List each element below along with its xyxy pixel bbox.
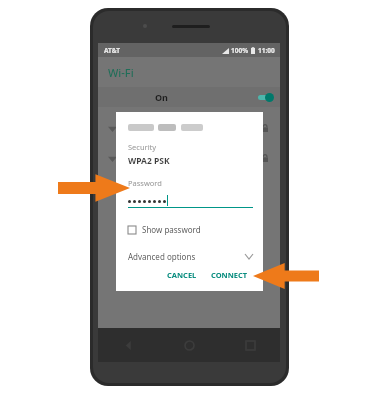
staticText: Security <box>128 142 157 152</box>
staticText: CANCEL <box>167 270 197 280</box>
staticText: WPA2 PSK <box>128 155 170 167</box>
staticText: Password <box>128 178 162 188</box>
button[interactable]: On <box>98 87 280 107</box>
staticText: On <box>155 91 168 103</box>
staticText: Show password <box>142 224 201 235</box>
other: Arrow pointing to password field <box>58 173 130 203</box>
staticText: CONNECT <box>211 270 248 280</box>
staticText: Wi-Fi <box>108 65 134 80</box>
button[interactable]: Show password <box>128 224 201 235</box>
button[interactable]: CANCEL <box>162 267 202 283</box>
button[interactable]: Wi-Fi <box>98 57 280 87</box>
button[interactable]: MySpectrumWiFi66-2G <box>98 113 280 143</box>
staticText: Advanced options <box>128 251 196 262</box>
staticText: 11:00 <box>258 46 275 55</box>
button[interactable]: Advanced options <box>128 251 253 262</box>
other: Arrow pointing to Connect button <box>253 262 319 290</box>
button[interactable]: CONNECT <box>206 267 253 283</box>
button[interactable]: MySpectrumWiFi81-2G <box>98 143 280 173</box>
staticText: MySpectrumWiFi66-2G <box>134 122 225 134</box>
staticText: 100% <box>231 46 249 55</box>
staticText: MySpectrumWiFi81-2G <box>134 152 225 164</box>
staticText: AT&T <box>104 46 120 55</box>
